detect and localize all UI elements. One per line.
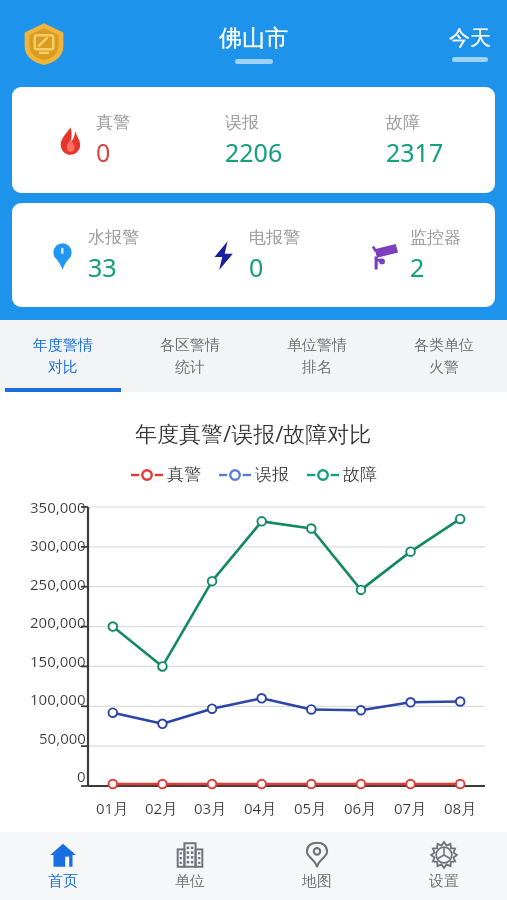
staticText: 真警: [167, 464, 201, 485]
button[interactable]: 水报警: [12, 203, 495, 307]
button[interactable]: 各区警情: [126, 320, 253, 392]
staticText: 对比: [48, 358, 78, 377]
staticText: 02月: [145, 798, 178, 818]
staticText: 2206: [225, 135, 283, 169]
staticText: 05月: [294, 798, 327, 818]
staticText: 07月: [394, 798, 427, 818]
staticText: 真警: [96, 112, 130, 133]
button[interactable]: 各类单位: [380, 320, 507, 392]
button[interactable]: 首页: [0, 832, 126, 900]
staticText: 水报警: [88, 227, 139, 248]
staticText: 地图: [302, 872, 332, 891]
staticText: 0: [77, 766, 86, 786]
button[interactable]: 年度警情: [0, 320, 126, 392]
staticText: 单位: [175, 872, 205, 891]
button[interactable]: 真警: [12, 87, 495, 193]
staticText: 04月: [244, 798, 277, 818]
button[interactable]: 应用图标: [22, 22, 66, 66]
staticText: 100,000: [30, 689, 86, 709]
staticText: 01月: [96, 798, 129, 818]
staticText: 误报: [225, 112, 259, 133]
staticText: 今天: [449, 25, 491, 51]
staticText: 单位警情: [287, 336, 347, 355]
staticText: 火警: [429, 358, 459, 377]
staticText: 200,000: [30, 612, 86, 632]
staticText: 故障: [343, 464, 377, 485]
staticText: 03月: [194, 798, 227, 818]
staticText: 33: [88, 250, 117, 284]
staticText: 各区警情: [160, 336, 220, 355]
staticText: 佛山市: [219, 24, 288, 53]
button[interactable]: 地图: [253, 832, 380, 900]
staticText: 统计: [175, 358, 205, 377]
staticText: 监控器: [410, 227, 461, 248]
staticText: 故障: [386, 112, 420, 133]
staticText: 排名: [302, 358, 332, 377]
button[interactable]: 单位: [126, 832, 253, 900]
staticText: 50,000: [39, 728, 86, 748]
staticText: 06月: [344, 798, 377, 818]
staticText: 设置: [429, 872, 459, 891]
staticText: 300,000: [30, 535, 86, 555]
button[interactable]: 今天: [449, 25, 491, 62]
staticText: 150,000: [30, 651, 86, 671]
staticText: 电报警: [249, 227, 300, 248]
staticText: 0: [96, 135, 111, 169]
staticText: 2: [410, 250, 425, 284]
staticText: 误报: [255, 464, 289, 485]
staticText: 08月: [444, 798, 477, 818]
button[interactable]: 设置: [380, 832, 507, 900]
staticText: 年度警情: [33, 336, 93, 355]
staticText: 2317: [386, 135, 444, 169]
staticText: 350,000: [30, 497, 86, 517]
staticText: 各类单位: [414, 336, 474, 355]
staticText: 首页: [48, 872, 78, 891]
staticText: 250,000: [30, 574, 86, 594]
staticText: 年度真警/误报/故障对比: [135, 418, 372, 448]
button[interactable]: 单位警情: [253, 320, 380, 392]
staticText: 0: [249, 250, 264, 284]
